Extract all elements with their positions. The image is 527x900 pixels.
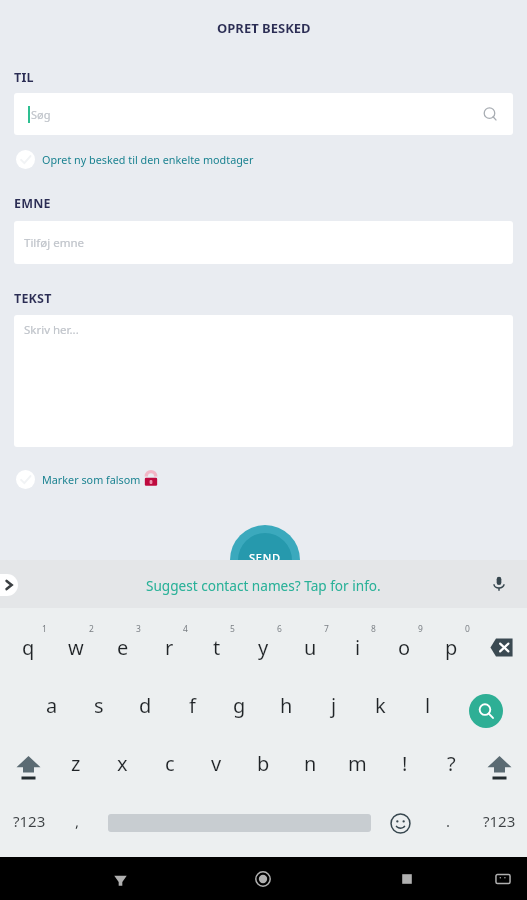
button[interactable]: ?: [428, 734, 475, 792]
staticText: m: [348, 750, 367, 777]
button[interactable]: b: [240, 734, 287, 792]
button[interactable]: Recents: [387, 859, 427, 899]
button[interactable]: Søg: [14, 93, 513, 135]
staticText: z: [71, 750, 81, 777]
staticText: u: [304, 634, 317, 661]
staticText: o: [398, 634, 411, 661]
button[interactable]: x: [99, 734, 146, 792]
button[interactable]: Marker som falsom: [16, 469, 158, 489]
staticText: k: [375, 692, 386, 719]
button[interactable]: Expand suggestions: [0, 574, 18, 596]
staticText: 6: [277, 623, 282, 635]
staticText: Opret ny besked til den enkelte modtager: [42, 152, 254, 167]
button[interactable]: v: [193, 734, 240, 792]
button[interactable]: Shift: [475, 734, 527, 792]
button[interactable]: p: [428, 618, 475, 676]
button[interactable]: Home: [243, 859, 283, 899]
staticText: 8: [371, 623, 376, 635]
staticText: 4: [183, 623, 188, 635]
button[interactable]: ?123: [471, 792, 527, 850]
staticText: SEND: [249, 550, 281, 565]
button[interactable]: !: [381, 734, 428, 792]
button[interactable]: ,: [59, 792, 95, 850]
button[interactable]: d: [122, 676, 169, 734]
staticText: Skriv her...: [24, 322, 79, 338]
button[interactable]: s: [75, 676, 122, 734]
button[interactable]: o: [381, 618, 428, 676]
button[interactable]: Space: [95, 792, 375, 850]
staticText: b: [257, 750, 270, 777]
staticText: h: [280, 692, 293, 719]
staticText: t: [213, 634, 221, 661]
staticText: Søg: [31, 107, 51, 122]
button[interactable]: Tilføj emne: [14, 221, 513, 264]
staticText: r: [165, 634, 174, 661]
staticText: .: [446, 811, 451, 831]
staticText: !: [402, 750, 408, 777]
button[interactable]: .: [425, 792, 471, 850]
button[interactable]: i: [334, 618, 381, 676]
staticText: e: [117, 634, 129, 661]
staticText: EMNE: [14, 195, 51, 212]
staticText: s: [94, 692, 104, 719]
staticText: 5: [230, 623, 235, 635]
staticText: 1: [42, 623, 47, 635]
button[interactable]: m: [334, 734, 381, 792]
staticText: TEKST: [14, 290, 52, 307]
staticText: ?123: [13, 811, 46, 831]
button[interactable]: k: [357, 676, 404, 734]
button[interactable]: z: [52, 734, 99, 792]
staticText: c: [165, 750, 175, 777]
staticText: d: [139, 692, 152, 719]
staticText: j: [331, 692, 337, 719]
staticText: l: [425, 692, 431, 719]
staticText: 7: [324, 623, 329, 635]
button[interactable]: r: [146, 618, 193, 676]
button[interactable]: u: [287, 618, 334, 676]
staticText: y: [258, 634, 269, 661]
button[interactable]: Search: [451, 676, 527, 734]
button[interactable]: Backspace: [475, 618, 527, 676]
staticText: q: [22, 634, 35, 661]
button[interactable]: Voice input: [486, 571, 512, 597]
button[interactable]: h: [263, 676, 310, 734]
button[interactable]: c: [146, 734, 193, 792]
staticText: p: [445, 634, 458, 661]
button[interactable]: Emoji: [375, 792, 425, 850]
button[interactable]: y: [240, 618, 287, 676]
staticText: ,: [75, 811, 80, 831]
button[interactable]: q: [5, 618, 52, 676]
staticText: ?: [447, 750, 456, 777]
button[interactable]: l: [404, 676, 451, 734]
staticText: ?123: [483, 811, 516, 831]
button[interactable]: g: [216, 676, 263, 734]
button[interactable]: ?123: [0, 792, 59, 850]
staticText: x: [117, 750, 128, 777]
button[interactable]: Shift: [0, 734, 52, 792]
staticText: w: [68, 634, 84, 661]
staticText: OPRET BESKED: [217, 19, 311, 37]
staticText: g: [233, 692, 246, 719]
staticText: Tilføj emne: [24, 235, 85, 251]
staticText: f: [189, 692, 196, 719]
button[interactable]: Hide keyboard: [100, 859, 140, 899]
staticText: 9: [418, 623, 423, 635]
staticText: 3: [136, 623, 141, 635]
button[interactable]: n: [287, 734, 334, 792]
button[interactable]: SEND: [230, 525, 300, 595]
staticText: 2: [89, 623, 94, 635]
button[interactable]: t: [193, 618, 240, 676]
button[interactable]: f: [169, 676, 216, 734]
staticText: Marker som falsom: [42, 472, 141, 487]
staticText: 0: [465, 623, 470, 635]
button[interactable]: j: [310, 676, 357, 734]
button[interactable]: a: [28, 676, 75, 734]
staticText: a: [46, 692, 58, 719]
button[interactable]: e: [99, 618, 146, 676]
staticText: v: [211, 750, 222, 777]
button[interactable]: w: [52, 618, 99, 676]
staticText: Suggest contact names? Tap for info.: [146, 576, 381, 595]
button[interactable]: Switch keyboard: [485, 861, 521, 897]
button[interactable]: Opret ny besked til den enkelte modtager: [16, 149, 254, 169]
